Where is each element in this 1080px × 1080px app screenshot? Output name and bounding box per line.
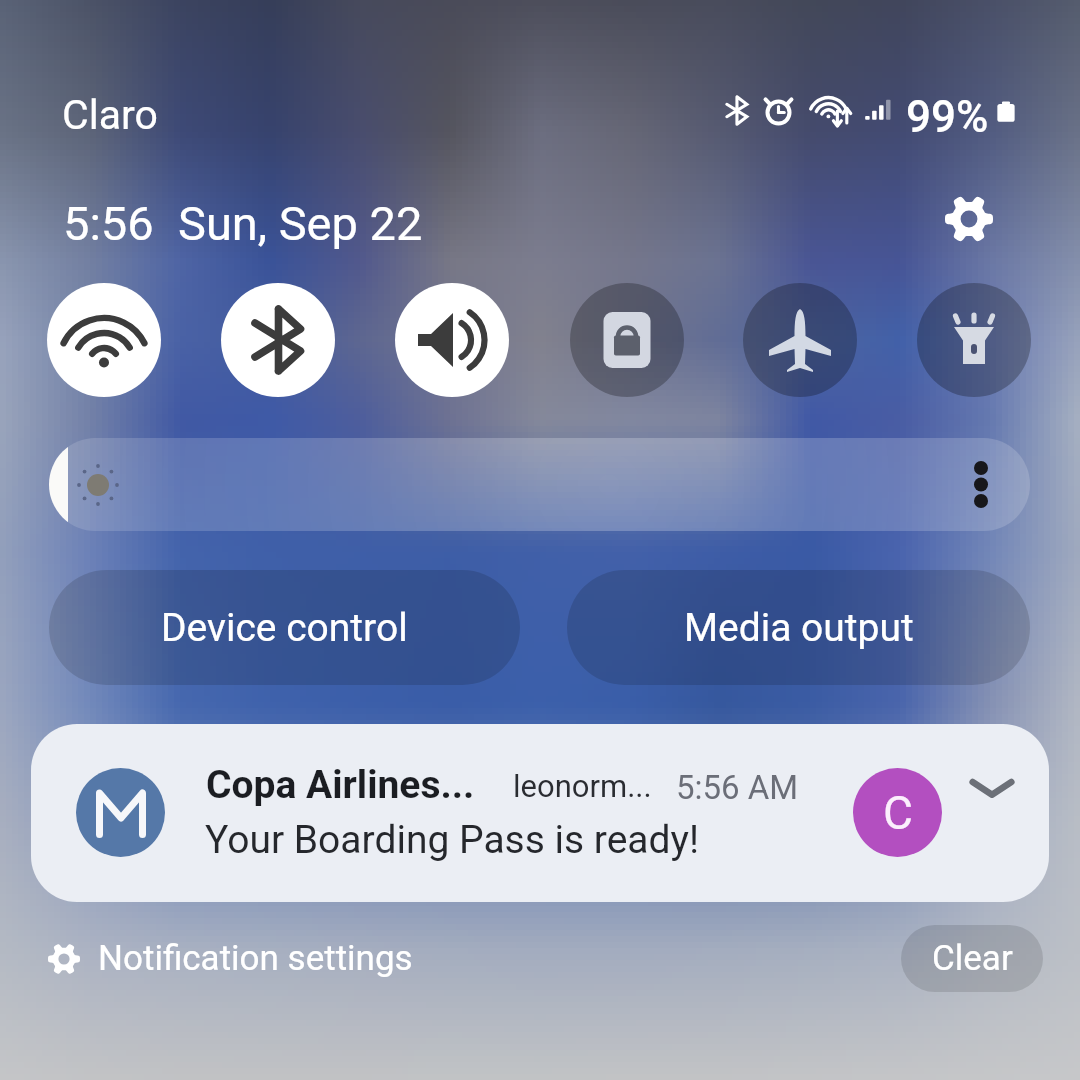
staticText: Media output: [684, 605, 914, 651]
staticText: Your Boarding Pass is ready!: [205, 817, 700, 863]
staticText: Copa Airlines...: [206, 762, 475, 808]
other: More brightness options: [974, 461, 988, 508]
staticText: 99%: [906, 91, 989, 143]
staticText: leonorm...: [513, 768, 652, 804]
staticText: Device control: [161, 605, 408, 651]
staticText: 5:56: [63, 196, 154, 251]
button[interactable]: Airplane mode: [743, 283, 857, 397]
button[interactable]: Auto rotate: [570, 283, 684, 397]
staticText: C: [883, 786, 913, 840]
staticText: 5:56 AM: [676, 768, 799, 807]
button[interactable]: Clear: [901, 925, 1043, 992]
button[interactable]: Notification settings: [48, 932, 413, 986]
staticText: Claro: [62, 91, 158, 139]
button[interactable]: Copa Airlines...: [31, 724, 1049, 902]
button[interactable]: Flashlight: [917, 283, 1031, 397]
button[interactable]: Expand notification: [961, 757, 1023, 819]
button[interactable]: Settings: [940, 190, 998, 248]
staticText: Notification settings: [98, 938, 413, 979]
button[interactable]: Bluetooth: [221, 283, 335, 397]
button[interactable]: Wi-Fi: [47, 283, 161, 397]
staticText: Clear: [932, 938, 1013, 979]
button[interactable]: Sound: [395, 283, 509, 397]
button[interactable]: Media output: [567, 570, 1030, 685]
staticText: Sun, Sep 22: [178, 196, 423, 251]
button[interactable]: More brightness options: [49, 438, 1030, 531]
button[interactable]: Device control: [49, 570, 520, 685]
